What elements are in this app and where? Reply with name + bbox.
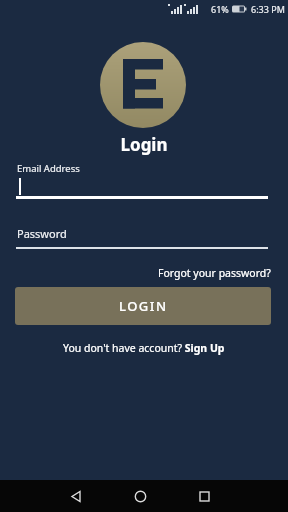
staticText: Login bbox=[0, 133, 288, 156]
staticText: 6:33 PM bbox=[251, 3, 285, 15]
button[interactable] bbox=[108, 480, 172, 512]
staticText: Password bbox=[17, 226, 67, 241]
button[interactable]: LOGIN bbox=[15, 287, 271, 325]
staticText: 61% bbox=[211, 3, 229, 15]
staticText: LOGIN bbox=[119, 297, 168, 315]
button[interactable]: Forgot your password? bbox=[158, 266, 271, 280]
button[interactable] bbox=[172, 480, 236, 512]
button[interactable]: You don't have account? Sign Up bbox=[63, 341, 225, 355]
button[interactable] bbox=[44, 480, 108, 512]
staticText: Email Address bbox=[17, 162, 80, 175]
